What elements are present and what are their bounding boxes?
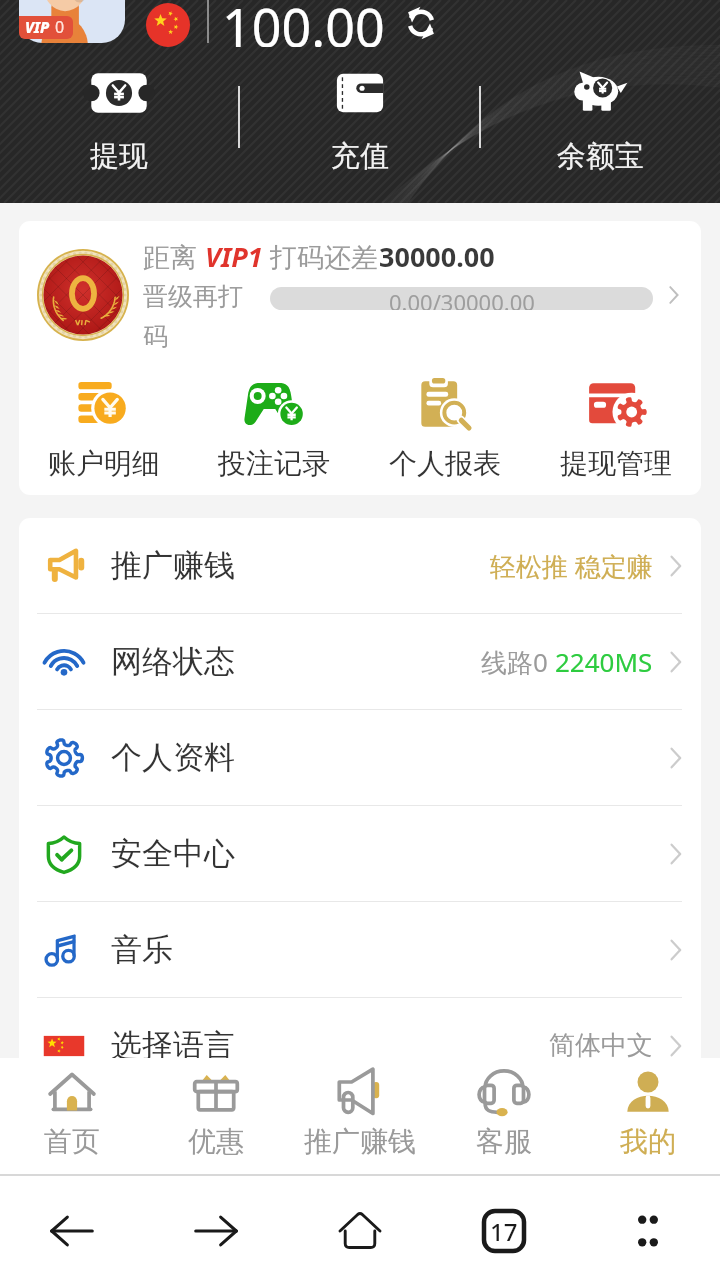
staticText: 轻松推 稳定赚: [490, 548, 653, 584]
button[interactable]: 个人报表: [359, 366, 530, 487]
button[interactable]: Refresh balance: [404, 6, 438, 40]
staticText: 30000.00: [379, 238, 495, 275]
staticText: 账户明细: [48, 446, 160, 481]
staticText: 提现管理: [560, 446, 672, 481]
button[interactable]: 推广赚钱: [288, 1058, 432, 1174]
button[interactable]: 客服: [432, 1058, 576, 1174]
staticText: 个人报表: [389, 446, 501, 481]
staticText: 2240MS: [555, 644, 653, 679]
button[interactable]: 余额宝: [481, 58, 720, 176]
button[interactable]: 距离: [19, 221, 701, 362]
staticText: 投注记录: [218, 446, 330, 481]
staticText: 充值: [331, 138, 389, 175]
staticText: 我的: [620, 1124, 676, 1159]
staticText: VIP1: [205, 238, 263, 275]
button[interactable]: 个人资料: [19, 710, 701, 805]
button[interactable]: 提现管理: [530, 366, 701, 487]
button[interactable]: 提现: [0, 58, 238, 176]
button[interactable]: 投注记录: [189, 366, 359, 487]
button[interactable]: Tabs: [432, 1176, 576, 1286]
button[interactable]: More: [576, 1176, 720, 1286]
button[interactable]: 优惠: [144, 1058, 288, 1174]
button[interactable]: 账户明细: [19, 366, 189, 487]
staticText: 距离: [143, 238, 205, 275]
staticText: 100.00: [222, 0, 385, 47]
staticText: 网络状态: [111, 642, 235, 681]
button[interactable]: 我的: [576, 1058, 720, 1174]
staticText: 0: [55, 16, 65, 38]
staticText: 首页: [44, 1124, 100, 1159]
button[interactable]: 网络状态: [19, 614, 701, 709]
button[interactable]: 音乐: [19, 902, 701, 997]
button[interactable]: Home: [288, 1176, 432, 1286]
button[interactable]: Back: [0, 1176, 144, 1286]
staticText: 余额宝: [557, 138, 644, 175]
staticText: 0.00/30000.00: [389, 287, 535, 310]
staticText: 晋级再打码: [143, 281, 247, 352]
staticText: 推广赚钱: [304, 1124, 416, 1159]
staticText: 推广赚钱: [111, 546, 235, 585]
button[interactable]: 选择语言: [19, 998, 701, 1058]
button[interactable]: 安全中心: [19, 806, 701, 901]
staticText: 提现: [90, 138, 148, 175]
staticText: VIP: [25, 17, 50, 37]
staticText: 线路0: [481, 644, 555, 680]
button[interactable]: 充值: [240, 58, 479, 176]
staticText: 打码还差: [263, 238, 379, 275]
staticText: 个人资料: [111, 738, 235, 777]
staticText: 选择语言: [111, 1026, 235, 1058]
button[interactable]: 推广赚钱: [19, 518, 701, 613]
staticText: 简体中文: [549, 1029, 653, 1058]
button[interactable]: 首页: [0, 1058, 144, 1174]
staticText: 音乐: [111, 930, 173, 969]
button[interactable]: Forward: [144, 1176, 288, 1286]
staticText: 17: [490, 1215, 518, 1248]
staticText: 优惠: [188, 1124, 244, 1159]
staticText: 安全中心: [111, 834, 235, 873]
staticText: 客服: [476, 1124, 532, 1159]
